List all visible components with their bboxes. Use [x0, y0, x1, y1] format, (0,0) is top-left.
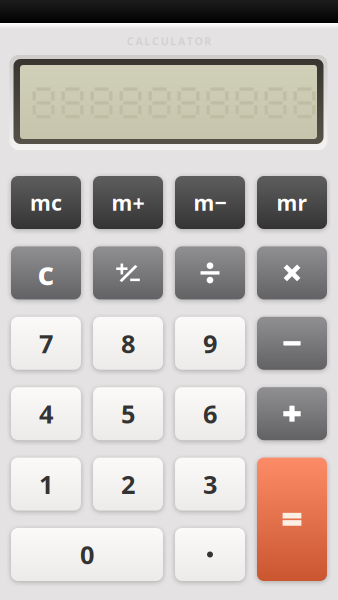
button[interactable]: plus minus — [93, 246, 163, 299]
staticText: U — [161, 34, 169, 48]
button[interactable]: 3 — [175, 458, 245, 511]
button[interactable]: add — [257, 387, 327, 440]
button[interactable]: 0 — [11, 528, 163, 581]
button[interactable]: decimal point — [175, 528, 245, 581]
staticText: 0 — [80, 538, 94, 571]
button[interactable]: 9 — [175, 317, 245, 370]
staticText: L — [144, 34, 150, 48]
button[interactable]: multiply — [257, 246, 327, 299]
staticText: mr — [276, 188, 307, 217]
button[interactable]: memory recall — [257, 176, 327, 229]
button[interactable]: memory add — [93, 176, 163, 229]
button[interactable]: 5 — [93, 387, 163, 440]
button[interactable]: 8 — [93, 317, 163, 370]
button[interactable]: clear — [11, 246, 81, 299]
staticText: T — [187, 34, 193, 48]
button[interactable]: 2 — [93, 458, 163, 511]
staticText: C — [152, 34, 159, 48]
button[interactable]: memory subtract — [175, 176, 245, 229]
staticText: 6 — [203, 397, 217, 430]
staticText: O — [194, 34, 202, 48]
staticText: 9 — [203, 326, 217, 360]
button[interactable]: divide — [175, 246, 245, 299]
staticText: 1 — [39, 467, 53, 501]
staticText: m+ — [111, 188, 144, 217]
button[interactable]: memory clear — [11, 176, 81, 229]
staticText: 7 — [39, 326, 53, 360]
staticText: 8 — [121, 326, 135, 360]
staticText: A — [135, 34, 142, 48]
staticText: 2 — [121, 467, 135, 501]
staticText: mc — [30, 188, 62, 217]
staticText: 3 — [203, 467, 217, 501]
button[interactable]: subtract — [257, 317, 327, 370]
button[interactable]: 6 — [175, 387, 245, 440]
button[interactable]: 4 — [11, 387, 81, 440]
staticText: R — [204, 34, 211, 48]
staticText: 4 — [39, 397, 53, 430]
button[interactable]: 1 — [11, 458, 81, 511]
staticText: 5 — [121, 397, 135, 430]
staticText: m− — [193, 188, 226, 217]
staticText: c — [37, 252, 54, 294]
button[interactable]: 7 — [11, 317, 81, 370]
button[interactable]: equals — [257, 458, 327, 581]
staticText: L — [170, 34, 176, 48]
staticText: A — [178, 34, 185, 48]
staticText: C — [127, 34, 134, 48]
